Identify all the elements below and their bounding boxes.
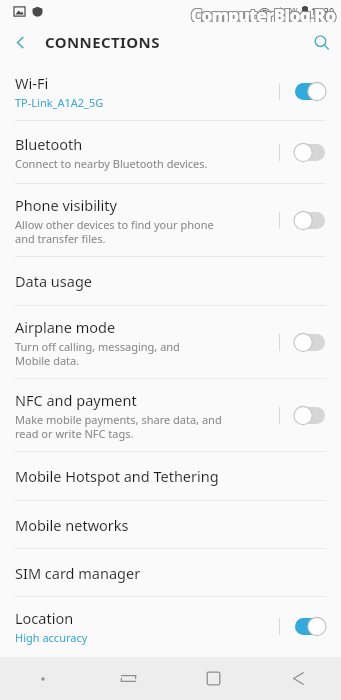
staticText: Phone visibility bbox=[15, 195, 117, 215]
button[interactable]: Mobile Hotspot and Tethering bbox=[0, 452, 341, 500]
button[interactable]: On bbox=[293, 82, 327, 101]
staticText: Bluetooth bbox=[15, 134, 83, 154]
staticText: Airplane mode bbox=[15, 317, 116, 337]
staticText: Wi-Fi bbox=[15, 73, 49, 93]
button[interactable]: Back bbox=[0, 22, 40, 62]
staticText: ComputerBlog.Ro bbox=[192, 5, 337, 22]
button[interactable]: Off bbox=[293, 406, 327, 425]
staticText: TP-Link_A1A2_5G bbox=[15, 95, 104, 110]
staticText: 60% bbox=[283, 6, 299, 17]
staticText: ComputerBlog.Ro bbox=[191, 3, 336, 22]
staticText: ComputerBlog.Ro bbox=[190, 4, 335, 22]
staticText: Data usage bbox=[15, 271, 92, 291]
staticText: 12:39 bbox=[311, 5, 335, 17]
staticText: Location bbox=[15, 608, 74, 628]
button[interactable]: Bluetooth bbox=[0, 121, 341, 183]
staticText: ComputerBlog.Ro bbox=[192, 4, 337, 22]
button[interactable]: Back bbox=[256, 657, 341, 700]
button[interactable]: Indicator bbox=[0, 657, 86, 700]
staticText: SIM card manager bbox=[15, 563, 141, 583]
staticText: Mobile Hotspot and Tethering bbox=[15, 466, 219, 486]
staticText: CONNECTIONS bbox=[45, 32, 160, 52]
button[interactable]: On bbox=[293, 617, 327, 636]
button[interactable]: Off bbox=[293, 143, 327, 162]
staticText: Connect to nearby Bluetooth devices. bbox=[15, 156, 208, 171]
staticText: Turn off calling, messaging, and Mobile … bbox=[15, 339, 180, 368]
button[interactable]: Search bbox=[301, 22, 341, 62]
staticText: Make mobile payments, share data, and re… bbox=[15, 412, 222, 441]
button[interactable]: Off bbox=[293, 333, 327, 352]
button[interactable]: Airplane mode bbox=[0, 306, 341, 378]
staticText: ComputerBlog.Ro bbox=[190, 3, 335, 22]
button[interactable]: Mobile networks bbox=[0, 501, 341, 548]
button[interactable]: Off bbox=[293, 211, 327, 230]
button[interactable]: Switch bbox=[86, 657, 171, 700]
staticText: Mobile networks bbox=[15, 515, 129, 535]
staticText: High accuracy bbox=[15, 630, 88, 645]
staticText: ComputerBlog.Ro bbox=[190, 5, 335, 22]
button[interactable]: Recents bbox=[171, 657, 256, 700]
button[interactable]: Location bbox=[0, 597, 341, 655]
staticText: ComputerBlog.Ro bbox=[192, 3, 337, 22]
staticText: Allow other devices to find your phone a… bbox=[15, 217, 214, 246]
staticText: ComputerBlog.Ro bbox=[191, 4, 336, 22]
staticText: ComputerBlog.Ro bbox=[191, 5, 336, 22]
button[interactable]: SIM card manager bbox=[0, 549, 341, 596]
button[interactable]: Phone visibility bbox=[0, 184, 341, 256]
staticText: NFC and payment bbox=[15, 390, 137, 410]
button[interactable]: Data usage bbox=[0, 257, 341, 305]
button[interactable]: Wi-Fi bbox=[0, 62, 341, 120]
button[interactable]: NFC and payment bbox=[0, 379, 341, 451]
